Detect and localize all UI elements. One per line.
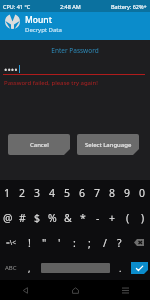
staticText: Battery: 62%+ [111,3,147,10]
staticText: ! [28,236,31,250]
button[interactable]: Backspace [127,230,150,255]
button[interactable]: Back [0,280,50,300]
button[interactable]: ? [112,230,127,255]
staticText: 9 [124,186,131,200]
staticText: 2 [19,186,26,200]
button[interactable]: @ [0,205,15,230]
button[interactable]: 0 [135,180,150,205]
button[interactable]: $ [30,205,45,230]
button[interactable]: =\< [0,230,22,255]
button[interactable]: 9 [120,180,135,205]
staticText: % [48,211,57,225]
button[interactable]: 6 [75,180,90,205]
staticText: # [19,211,26,225]
button[interactable]: - [90,205,105,230]
staticText: Enter Password [0,46,150,55]
staticText: ' [58,236,61,250]
staticText: 1 [4,186,11,200]
staticText: . [119,262,122,274]
button[interactable]: Home [50,280,100,300]
button[interactable]: ( [120,205,135,230]
button[interactable]: ' [52,230,67,255]
button[interactable]: Enter [128,255,150,280]
button[interactable]: ; [82,230,97,255]
button[interactable]: : [67,230,82,255]
button[interactable]: , [22,255,37,280]
button[interactable]: 2 [15,180,30,205]
staticText: : [73,236,76,250]
staticText: =\< [6,238,16,247]
staticText: * [80,211,86,225]
button[interactable]: Space [37,255,113,280]
staticText: ? [117,236,122,250]
button[interactable]: * [75,205,90,230]
staticText: Cancel [30,141,49,149]
staticText: Mount [25,14,52,26]
staticText: & [64,211,72,225]
staticText: / [103,236,107,250]
staticText: 6 [79,186,86,200]
staticText: 8 [109,186,116,200]
staticText: " [42,236,47,250]
button[interactable]: 4 [45,180,60,205]
staticText: Password failed, please try again! [4,79,98,87]
button[interactable]: 7 [90,180,105,205]
staticText: ) [141,211,145,225]
button[interactable]: + [105,205,120,230]
staticText: - [96,211,100,225]
staticText: ABC [5,264,17,272]
button[interactable]: % [45,205,60,230]
staticText: + [109,211,116,225]
button[interactable]: 3 [30,180,45,205]
button[interactable]: / [97,230,112,255]
staticText: ( [126,211,130,225]
button[interactable]: ) [135,205,150,230]
button[interactable]: ! [22,230,37,255]
staticText: 7 [94,186,101,200]
staticText: $ [34,211,41,225]
staticText: 5 [64,186,71,200]
staticText: 3 [34,186,41,200]
staticText: 4 [49,186,56,200]
staticText: @ [3,211,13,225]
staticText: 2:48 AM [60,3,81,10]
button[interactable]: 5 [60,180,75,205]
button[interactable]: Recent apps [100,280,150,300]
button[interactable]: & [60,205,75,230]
button[interactable]: . [113,255,128,280]
staticText: Select Language [85,141,132,149]
staticText: •••• [4,63,18,75]
button[interactable]: # [15,205,30,230]
button[interactable]: ABC [0,255,22,280]
button[interactable]: 8 [105,180,120,205]
staticText: Decrypt Data [25,26,62,34]
staticText: , [28,262,31,274]
staticText: ; [88,236,91,250]
staticText: 0 [139,186,146,200]
button[interactable]: Select Language [77,134,139,155]
button[interactable]: 1 [0,180,15,205]
staticText: CPU: 41 °C [3,3,31,10]
button[interactable]: " [37,230,52,255]
button[interactable]: Cancel [8,134,70,155]
